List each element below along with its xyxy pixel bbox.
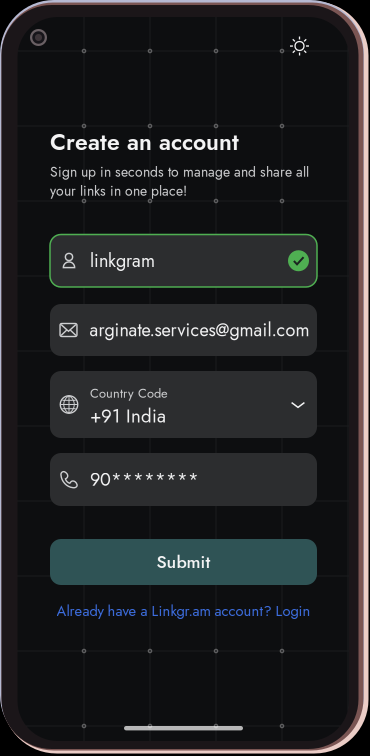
- button[interactable]: Already have a Linkgr.am account? Login: [50, 600, 317, 622]
- button[interactable]: Submit: [50, 539, 317, 585]
- button[interactable]: Toggle appearance: [282, 29, 316, 63]
- button[interactable]: Country Code: [50, 371, 317, 438]
- staticText: Sign up in seconds to manage and share a…: [50, 162, 309, 182]
- staticText: Country Code: [90, 384, 168, 402]
- staticText: your links in one place!: [50, 181, 187, 201]
- staticText: +91 India: [90, 402, 166, 429]
- staticText: Already have a Linkgr.am account? Login: [56, 600, 310, 622]
- staticText: arginate.services@gmail.com: [89, 317, 309, 343]
- staticText: Submit: [156, 549, 210, 575]
- staticText: Create an account: [50, 125, 239, 158]
- staticText: linkgram: [90, 248, 155, 274]
- staticText: 90********: [90, 466, 199, 492]
